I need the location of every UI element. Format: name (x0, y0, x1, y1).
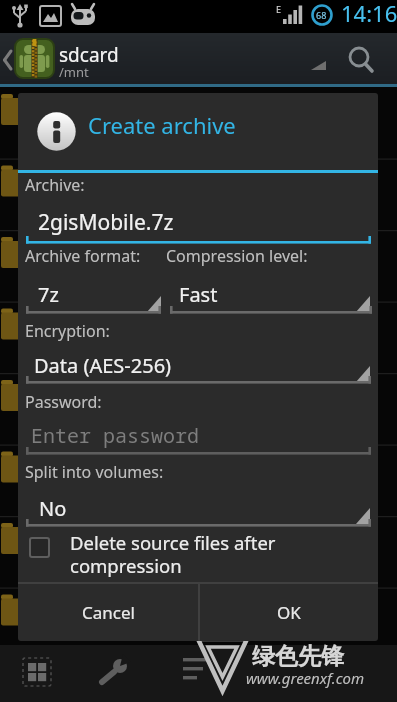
staticText: Create archive (88, 110, 236, 140)
staticText: 2gisMobile.7z (38, 208, 174, 237)
staticText: Archive format: (25, 245, 141, 267)
button[interactable]: Fast (170, 273, 372, 313)
staticText: Compression level: (166, 245, 308, 267)
button[interactable] (298, 47, 334, 77)
button[interactable]: Data (AES-256) (26, 348, 371, 382)
button[interactable] (9, 645, 69, 702)
button[interactable]: Delete source files after compression (23, 530, 373, 580)
button[interactable] (0, 33, 140, 84)
staticText: Fast (179, 281, 218, 308)
staticText: No (39, 495, 67, 522)
button[interactable]: No (26, 486, 371, 520)
staticText: 68 (316, 9, 327, 21)
button[interactable] (336, 35, 384, 82)
button[interactable] (88, 645, 148, 702)
staticText: Delete source files after compression (70, 530, 276, 579)
staticText: Archive: (25, 174, 85, 196)
staticText: sdcard (59, 42, 119, 66)
button[interactable]: OK (200, 584, 378, 641)
staticText: Encryption: (25, 320, 110, 342)
staticText: Split into volumes: (25, 461, 164, 483)
staticText: Data (AES-256) (34, 352, 172, 379)
button[interactable]: 7z (26, 273, 161, 313)
staticText: www.greenxf.com (246, 668, 365, 688)
button[interactable]: Enter password (31, 422, 371, 450)
staticText: /mnt (59, 63, 89, 79)
staticText: 7z (38, 281, 59, 308)
button[interactable]: 2gisMobile.7z (38, 208, 378, 238)
staticText: Enter password (31, 422, 199, 449)
button[interactable]: Cancel (18, 584, 198, 641)
staticText: Cancel (82, 601, 135, 624)
button[interactable] (168, 645, 228, 702)
staticText: 14:16 (341, 0, 397, 28)
staticText: E (276, 3, 282, 15)
staticText: Password: (25, 391, 102, 413)
staticText: 绿色先锋 (252, 642, 344, 671)
staticText: OK (277, 601, 301, 624)
